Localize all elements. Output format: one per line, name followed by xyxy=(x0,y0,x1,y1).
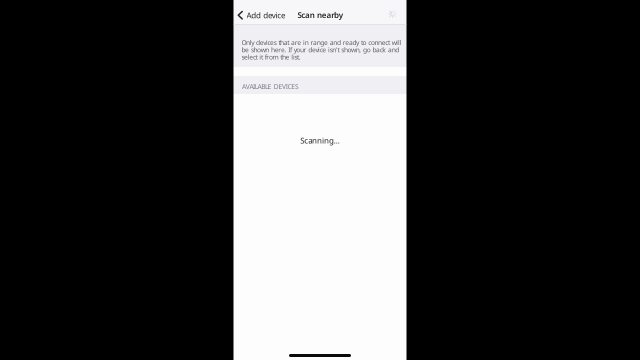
staticText: Only devices that are in range and ready… xyxy=(241,38,401,47)
staticText: Add device xyxy=(246,10,286,20)
staticText: Scan nearby xyxy=(297,10,343,20)
staticText: select it from the list. xyxy=(241,52,301,61)
button[interactable]: Add device xyxy=(233,0,292,25)
button[interactable]: Scanning xyxy=(388,0,406,25)
staticText: be shown here. If your device isn't show… xyxy=(241,45,399,54)
staticText: AVAILABLE DEVICES xyxy=(242,82,299,91)
staticText: Scanning... xyxy=(300,135,340,146)
